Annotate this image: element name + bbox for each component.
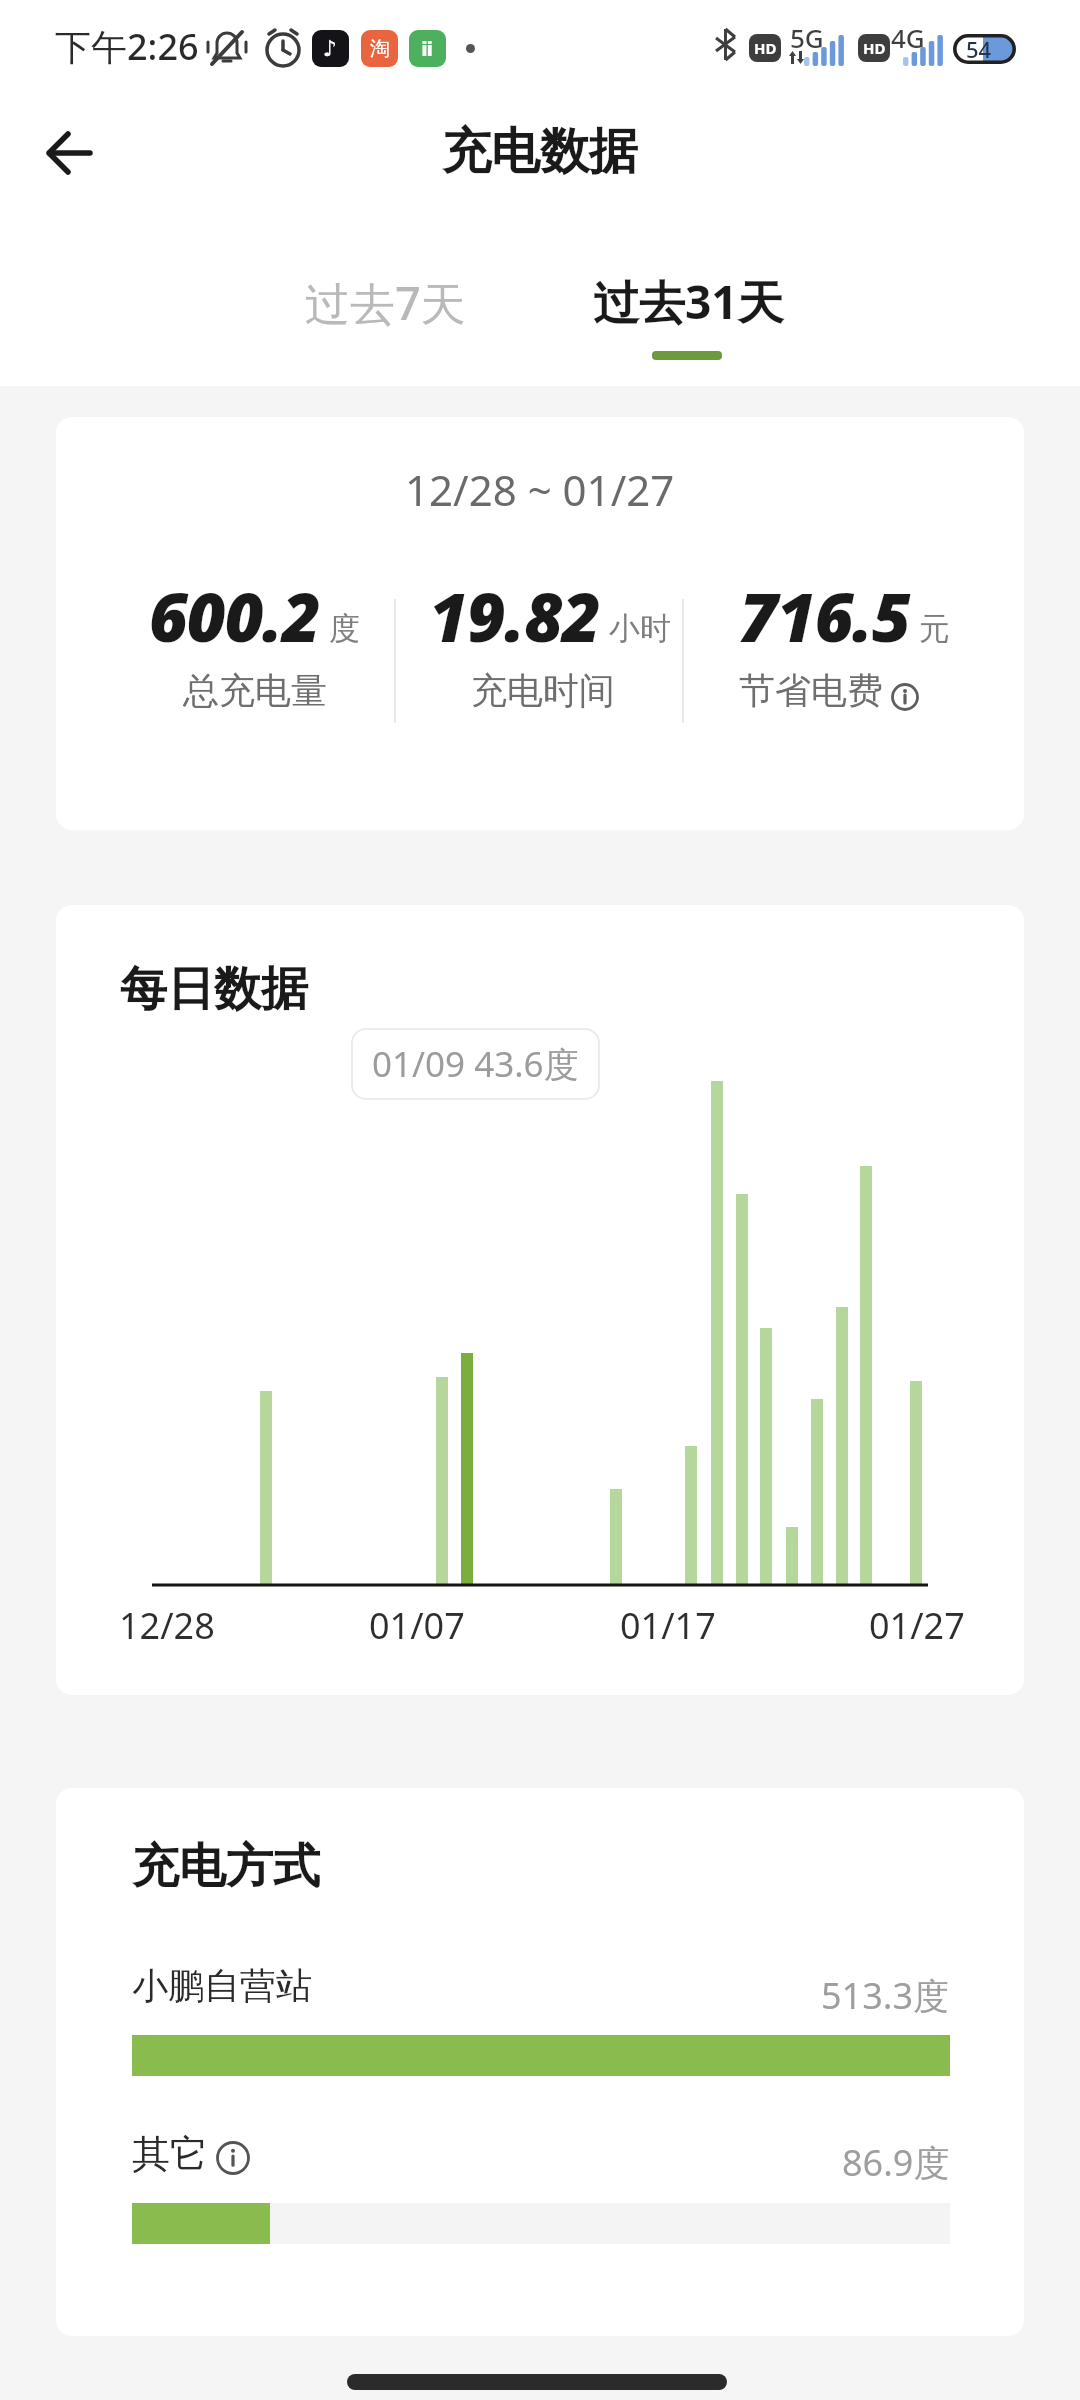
staticText: 5G — [790, 20, 824, 55]
staticText: 节省电费 — [739, 668, 883, 713]
staticText: 600.2 — [149, 570, 320, 661]
button[interactable]: 600.2 — [149, 570, 360, 661]
staticText: 12/28 — [119, 1601, 215, 1650]
staticText: 过去7天 — [305, 272, 466, 333]
staticText: 19.82 — [429, 570, 600, 661]
staticText: HD — [754, 38, 777, 58]
staticText: 01/07 — [369, 1601, 465, 1650]
staticText: 01/09 43.6度 — [372, 1040, 579, 1088]
staticText: 12/28 ~ 01/27 — [405, 461, 675, 518]
staticText: 充电时间 — [471, 668, 615, 713]
staticText: 淘 — [370, 36, 390, 61]
button[interactable] — [891, 683, 919, 711]
button[interactable] — [46, 130, 92, 176]
staticText: 4G — [891, 20, 925, 55]
staticText: 充电数据 — [442, 121, 638, 183]
staticText: 513.3度 — [821, 1971, 950, 2020]
button[interactable]: 过去31天 — [568, 265, 808, 337]
staticText: 01/27 — [869, 1601, 965, 1650]
staticText: 元 — [919, 609, 950, 648]
staticText: 过去31天 — [593, 270, 784, 333]
staticText: ♪ — [323, 36, 338, 62]
staticText: HD — [863, 38, 886, 58]
staticText: ⅱ — [421, 37, 434, 60]
staticText: 716.5 — [739, 570, 910, 661]
staticText: 小时 — [609, 609, 671, 648]
staticText: 小鹏自营站 — [132, 1963, 312, 2008]
staticText: 总充电量 — [183, 668, 327, 713]
button[interactable]: 过去7天 — [265, 266, 505, 338]
button[interactable] — [216, 2141, 250, 2175]
button[interactable]: 716.5 — [739, 570, 950, 661]
button[interactable]: 19.82 — [429, 570, 671, 661]
staticText: 每日数据 — [120, 960, 308, 1019]
staticText: 01/17 — [620, 1601, 716, 1650]
staticText: 54 — [966, 34, 992, 64]
staticText: 充电方式 — [132, 1837, 320, 1896]
staticText: 度 — [329, 609, 360, 648]
staticText: 86.9度 — [842, 2138, 950, 2187]
staticText: 其它 — [132, 2130, 208, 2178]
staticText: 下午2:26 — [55, 22, 199, 71]
